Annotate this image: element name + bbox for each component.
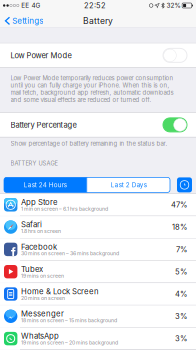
staticText: 20 mins on screen (21, 295, 65, 301)
staticText: 18% (172, 222, 187, 232)
staticText: 30 mins on screen – 36 mins background (21, 250, 119, 257)
button[interactable]: WhatsApp (0, 328, 196, 349)
staticText: Battery Percentage (10, 120, 76, 129)
staticText: 18 mins on screen – 15 mins background (21, 317, 117, 323)
button[interactable]: Facebook (0, 238, 196, 260)
staticText: Last 24 Hours (24, 181, 67, 189)
button[interactable]: Battery Percentage (0, 113, 196, 137)
staticText: Last 2 Days (111, 181, 147, 189)
staticText: 4G (31, 2, 40, 9)
staticText: EE (21, 2, 29, 9)
staticText: Safari (21, 220, 42, 229)
staticText: Settings (12, 16, 43, 26)
button[interactable]: Messenger (0, 305, 196, 327)
staticText: 47% (171, 200, 187, 209)
staticText: 19 mins on screen (21, 273, 64, 279)
staticText: BATTERY USAGE (10, 160, 57, 167)
button[interactable]: Settings (0, 14, 43, 28)
staticText: Facebook (21, 242, 57, 252)
staticText: Low Power Mode temporarily reduces power… (10, 74, 173, 103)
staticText: 32% (166, 2, 180, 9)
button[interactable]: Low Power Mode (0, 43, 196, 67)
staticText: Messenger (21, 309, 64, 318)
staticText: 5% (175, 267, 187, 276)
staticText: 4% (175, 289, 187, 299)
staticText: 1.8 hrs on screen (21, 228, 61, 234)
staticText: App Store (21, 198, 58, 207)
button[interactable]: Safari (0, 216, 196, 238)
button[interactable]: Last 2 Days (87, 177, 170, 192)
staticText: WhatsApp (21, 331, 59, 341)
staticText: Home & Lock Screen (21, 287, 99, 296)
staticText: Show percentage of battery remaining in … (10, 140, 167, 147)
button[interactable]: Show usage time detail (177, 177, 192, 192)
staticText: Battery (83, 16, 113, 26)
staticText: 22:52 (84, 1, 106, 10)
button[interactable]: Last 24 Hours (4, 177, 87, 192)
button[interactable]: Home & Lock Screen (0, 283, 196, 305)
staticText: 3% (175, 334, 187, 343)
staticText: 3% (175, 312, 187, 321)
staticText: Tubex (21, 264, 43, 274)
staticText: 1 min on screen – 6.1 hrs background (21, 206, 108, 212)
button[interactable]: App Store (0, 194, 196, 216)
staticText: 19 mins on screen – 20 mins background (21, 339, 118, 346)
button[interactable]: Tubex (0, 261, 196, 283)
staticText: 7% (176, 245, 187, 254)
staticText: Low Power Mode (10, 51, 71, 60)
